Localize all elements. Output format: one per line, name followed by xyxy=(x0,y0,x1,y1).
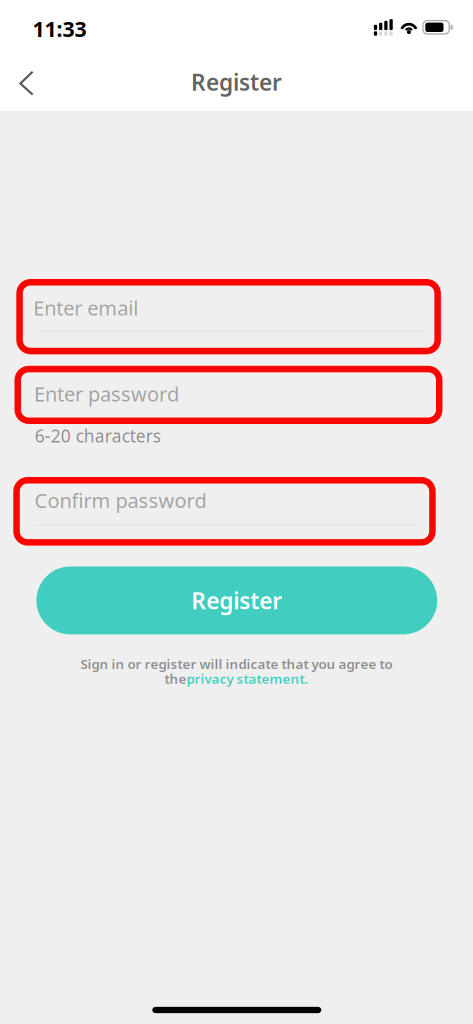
staticText: the xyxy=(164,670,186,687)
button[interactable]: privacy statement. xyxy=(186,670,308,687)
staticText: Enter email xyxy=(33,294,138,321)
staticText: Confirm password xyxy=(35,487,207,514)
staticText: privacy statement. xyxy=(186,670,308,687)
staticText: 6-20 characters xyxy=(35,424,161,447)
button[interactable]: Back xyxy=(12,62,42,105)
button[interactable]: Register xyxy=(36,566,437,634)
button[interactable]: Enter password xyxy=(34,380,179,407)
button[interactable]: Confirm password xyxy=(35,487,207,514)
staticText: Register xyxy=(191,67,282,97)
button[interactable]: Enter email xyxy=(33,294,138,321)
staticText: Enter password xyxy=(34,380,179,407)
staticText: Sign in or register will indicate that y… xyxy=(80,655,392,673)
staticText: 11:33 xyxy=(32,15,86,43)
staticText: Register xyxy=(191,585,282,615)
